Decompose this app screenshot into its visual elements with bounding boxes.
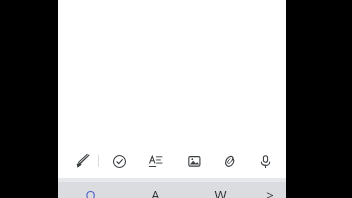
button[interactable]: Voice input [255, 151, 275, 171]
staticText: A [151, 186, 160, 198]
button[interactable]: Draw [73, 151, 93, 171]
button[interactable]: > [253, 182, 286, 198]
staticText: > [266, 186, 274, 198]
button[interactable]: W [188, 182, 253, 198]
staticText: Q [85, 186, 96, 198]
button[interactable]: A [123, 182, 188, 198]
button[interactable]: Formatting [145, 151, 165, 171]
button[interactable]: Q [58, 182, 123, 198]
staticText: W [214, 186, 227, 198]
button[interactable]: Checklist [109, 151, 129, 171]
button[interactable]: Insert image [184, 151, 204, 171]
button[interactable]: Attach file [219, 151, 239, 171]
